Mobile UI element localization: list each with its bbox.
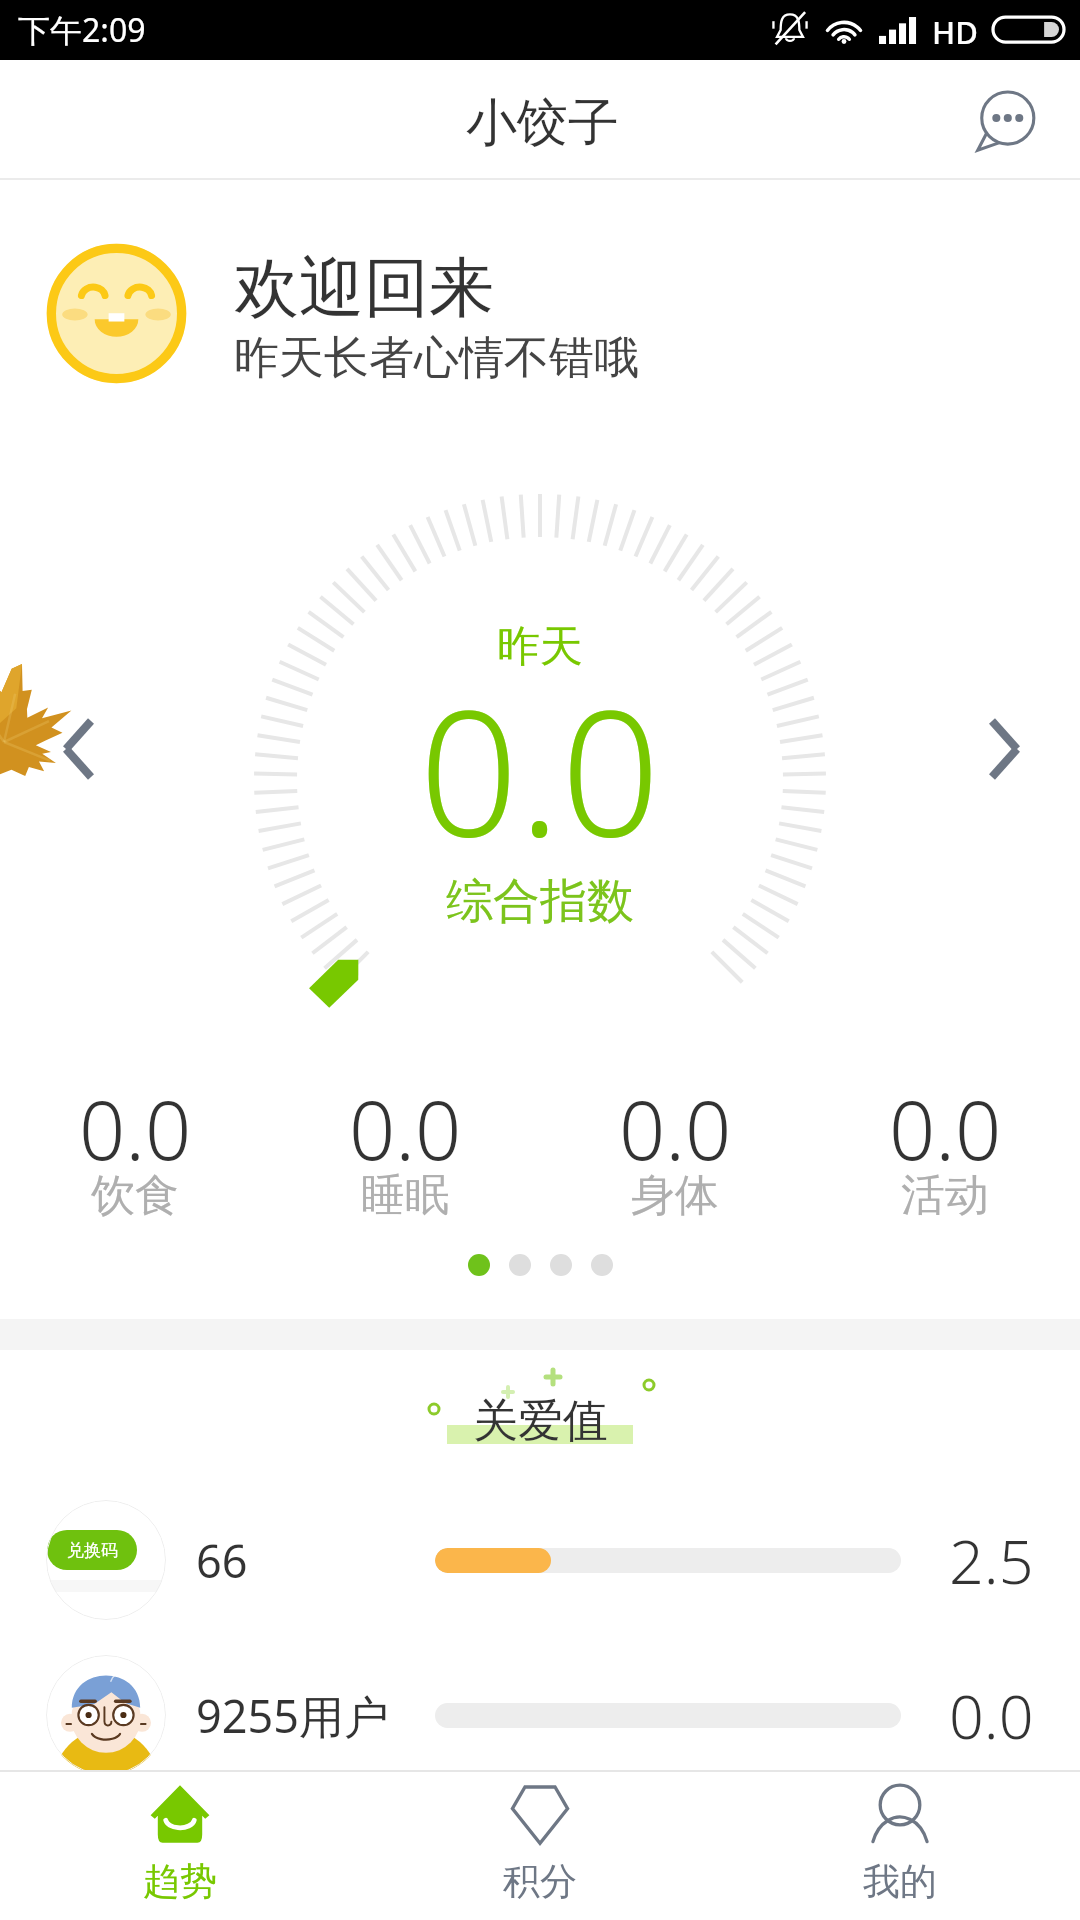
staticText: 趋势 [143,1858,217,1905]
staticText: 我的 [863,1858,937,1905]
staticText: 小饺子 [466,91,619,155]
staticText: 0.0 [349,1073,462,1183]
button[interactable]: Previous day [28,699,128,799]
staticText: 0.0 [889,1073,1002,1183]
staticText: 下午2:09 [18,8,146,52]
button[interactable]: 0.0 [0,1073,270,1243]
staticText: 欢迎回来 [234,247,494,329]
button[interactable]: 0.0 [540,1073,810,1243]
button[interactable]: 9255用户 [0,1640,1080,1790]
staticText: 0.0 [619,1073,732,1183]
button[interactable]: 兑换码 [0,1485,1080,1635]
staticText: 66 [196,1530,248,1591]
staticText: 积分 [503,1858,577,1905]
staticText: 昨天 [497,620,583,674]
staticText: 0.0 [79,1073,192,1183]
staticText: 2.5 [949,1519,1034,1602]
button[interactable]: Next day [955,699,1055,799]
staticText: 睡眠 [361,1168,449,1223]
staticText: HD [932,11,978,53]
button[interactable]: 0.0 [270,1073,540,1243]
staticText: 活动 [901,1168,989,1223]
staticText: 9255用户 [196,1685,389,1746]
staticText: 昨天长者心情不错哦 [234,330,639,387]
staticText: 饮食 [91,1168,179,1223]
button[interactable]: Messages [957,75,1053,171]
button[interactable]: 我的 [720,1772,1080,1920]
staticText: 兑换码 [67,1540,118,1561]
staticText: 0.0 [949,1674,1034,1757]
staticText: 身体 [631,1168,719,1223]
staticText: 综合指数 [446,872,634,931]
button[interactable]: 0.0 [810,1073,1080,1243]
button[interactable]: 趋势 [0,1772,360,1920]
staticText: 关爱值 [473,1393,608,1450]
staticText: 0.0 [419,650,661,887]
button[interactable]: 积分 [360,1772,720,1920]
